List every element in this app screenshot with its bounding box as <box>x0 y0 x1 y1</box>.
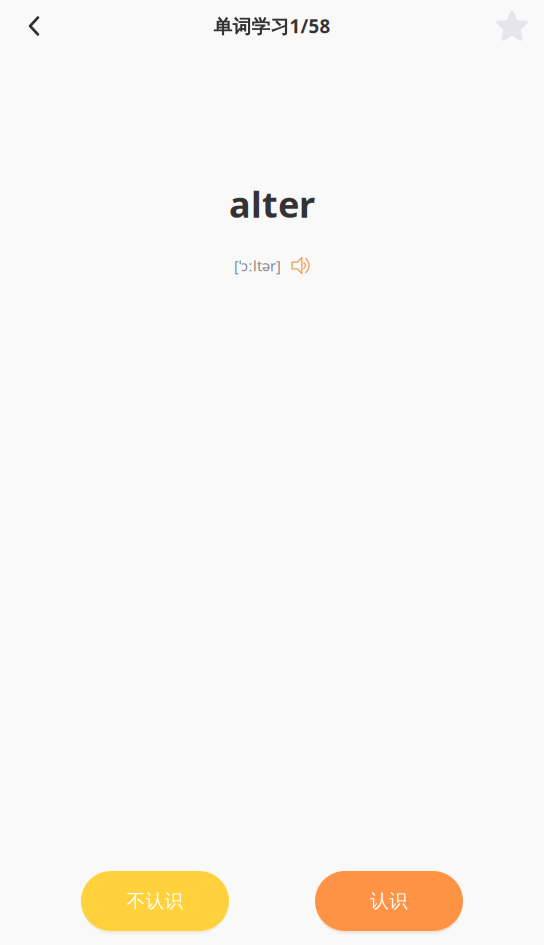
staticText: 认识 <box>370 889 408 912</box>
staticText: alter <box>229 180 315 228</box>
button[interactable]: Play pronunciation <box>291 257 310 274</box>
button[interactable]: Back <box>12 4 56 48</box>
button[interactable]: 不认识 <box>81 871 229 931</box>
button[interactable]: Add to favorites <box>490 4 534 48</box>
staticText: 单词学习1/58 <box>213 14 330 38</box>
staticText: 不认识 <box>126 889 183 912</box>
button[interactable]: 认识 <box>315 871 463 931</box>
staticText: [ˈɔːltər] <box>234 256 281 275</box>
